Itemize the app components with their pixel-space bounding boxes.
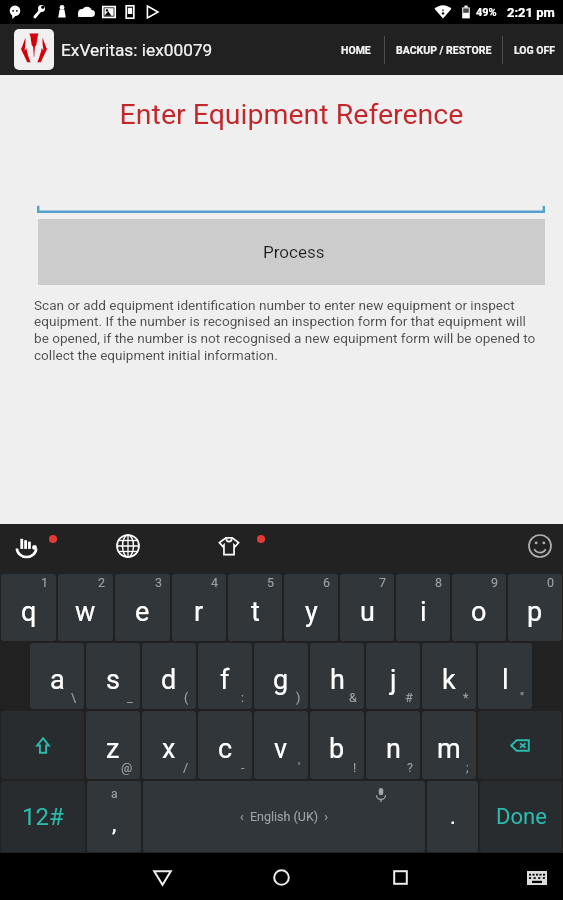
staticText: s — [106, 664, 120, 696]
staticText: l — [502, 664, 509, 696]
button[interactable]: s — [86, 643, 140, 709]
staticText: ? — [407, 760, 413, 775]
button[interactable]: u — [340, 574, 394, 641]
staticText: ( — [184, 690, 189, 705]
staticText: Process — [263, 242, 325, 262]
staticText: f — [220, 664, 230, 696]
staticText: x — [162, 733, 176, 765]
staticText: 3 — [155, 575, 163, 590]
staticText: 49% — [476, 6, 497, 19]
button[interactable]: Shift — [1, 711, 84, 779]
staticText: c — [218, 733, 233, 765]
button[interactable]: Language — [106, 524, 150, 568]
button[interactable]: Equipment reference input — [37, 177, 545, 213]
button[interactable]: v — [254, 711, 308, 779]
staticText: # — [405, 690, 413, 705]
staticText: BACKUP / RESTORE — [396, 44, 492, 56]
button[interactable]: a — [30, 643, 84, 709]
button[interactable]: t — [228, 574, 282, 641]
staticText: LOG OFF — [514, 44, 556, 56]
staticText: 6 — [323, 575, 331, 590]
staticText: e — [135, 596, 150, 628]
button[interactable]: p — [508, 574, 562, 641]
button[interactable]: 12# — [1, 781, 85, 852]
button[interactable]: Back — [140, 853, 184, 900]
staticText: Done — [496, 804, 547, 830]
staticText: v — [274, 733, 288, 765]
staticText: 8 — [435, 575, 443, 590]
staticText: 5 — [267, 575, 275, 590]
button[interactable]: h — [310, 643, 364, 709]
button[interactable]: LOG OFF — [503, 24, 563, 75]
button[interactable]: Emoji — [518, 524, 562, 568]
button[interactable]: y — [284, 574, 338, 641]
button[interactable]: b — [310, 711, 364, 779]
button[interactable]: o — [452, 574, 506, 641]
button[interactable]: Space — [143, 781, 425, 852]
button[interactable]: r — [172, 574, 226, 641]
button[interactable]: n — [366, 711, 420, 779]
button[interactable]: m — [422, 711, 476, 779]
staticText: ! — [353, 760, 357, 775]
button[interactable]: z — [86, 711, 140, 779]
button[interactable]: Done — [480, 781, 562, 852]
button[interactable]: Themes — [207, 524, 251, 568]
button[interactable]: Backspace — [478, 711, 562, 779]
staticText: 9 — [491, 575, 499, 590]
button[interactable]: Recents — [378, 853, 422, 900]
staticText: r — [194, 596, 204, 628]
button[interactable]: g — [254, 643, 308, 709]
staticText: h — [330, 664, 345, 696]
button[interactable]: Hide keyboard — [517, 853, 557, 900]
staticText: 1 — [41, 575, 49, 590]
button[interactable]: d — [142, 643, 196, 709]
staticText: a — [50, 664, 65, 696]
staticText: Scan or add equipment identification num… — [34, 297, 542, 364]
button[interactable]: Process — [38, 219, 545, 285]
staticText: m — [437, 733, 461, 765]
button[interactable]: c — [198, 711, 252, 779]
button[interactable]: w — [58, 574, 113, 641]
button[interactable]: i — [396, 574, 450, 641]
staticText: @ — [121, 760, 133, 775]
staticText: - — [241, 760, 245, 775]
staticText: j — [390, 664, 397, 696]
button[interactable]: q — [1, 574, 56, 641]
staticText: " — [520, 690, 525, 705]
staticText: 12# — [22, 803, 64, 831]
staticText: i — [420, 596, 427, 628]
staticText: . — [450, 804, 456, 830]
staticText: w — [75, 596, 96, 628]
button[interactable]: BACKUP / RESTORE — [385, 24, 502, 75]
button[interactable]: . — [427, 781, 478, 852]
staticText: g — [273, 664, 289, 696]
staticText: / — [183, 760, 189, 775]
staticText: y — [305, 596, 318, 628]
button[interactable]: Keyboard settings — [6, 524, 50, 568]
staticText: p — [527, 596, 543, 628]
staticText: 4 — [211, 575, 219, 590]
staticText: Enter Equipment Reference — [10, 98, 563, 131]
staticText: z — [106, 733, 120, 765]
button[interactable]: ExVeritas logo — [14, 29, 54, 70]
staticText: n — [386, 733, 401, 765]
button[interactable]: e — [115, 574, 170, 641]
staticText: 0 — [547, 575, 555, 590]
staticText: a — [111, 787, 118, 801]
button[interactable]: HOME — [328, 24, 384, 75]
staticText: \ — [71, 690, 77, 705]
button[interactable]: l — [478, 643, 532, 709]
staticText: ‹ English (UK) › — [240, 809, 329, 824]
staticText: u — [360, 596, 375, 628]
staticText: 7 — [379, 575, 387, 590]
button[interactable]: j — [366, 643, 420, 709]
button[interactable]: , — [87, 781, 141, 852]
staticText: ) — [296, 690, 301, 705]
staticText: o — [471, 596, 487, 628]
button[interactable]: x — [142, 711, 196, 779]
button[interactable]: Home — [259, 853, 303, 900]
staticText: , — [112, 811, 117, 837]
button[interactable]: f — [198, 643, 252, 709]
button[interactable]: k — [422, 643, 476, 709]
staticText: 2 — [98, 575, 106, 590]
